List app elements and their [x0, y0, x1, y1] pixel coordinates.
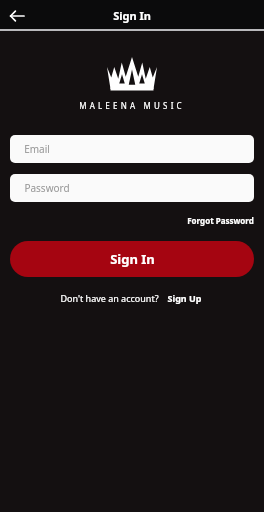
button[interactable]: Sign In — [10, 241, 254, 277]
button[interactable]: Back — [4, 3, 30, 29]
staticText: Password — [24, 181, 70, 195]
other: Maleena Music crown logo — [107, 57, 157, 90]
staticText: Sign Up — [167, 292, 202, 304]
button[interactable]: Email — [10, 135, 254, 163]
staticText: Don't have an account? — [60, 292, 159, 304]
staticText: Forgot Password — [187, 215, 254, 226]
staticText: Sign In — [110, 250, 155, 268]
staticText: Sign In — [113, 8, 151, 23]
button[interactable]: Forgot Password — [185, 214, 256, 227]
staticText: MALEENA MUSIC — [79, 100, 185, 111]
staticText: Email — [24, 142, 50, 156]
button[interactable]: Password — [10, 174, 254, 202]
button[interactable]: Sign Up — [165, 291, 204, 305]
